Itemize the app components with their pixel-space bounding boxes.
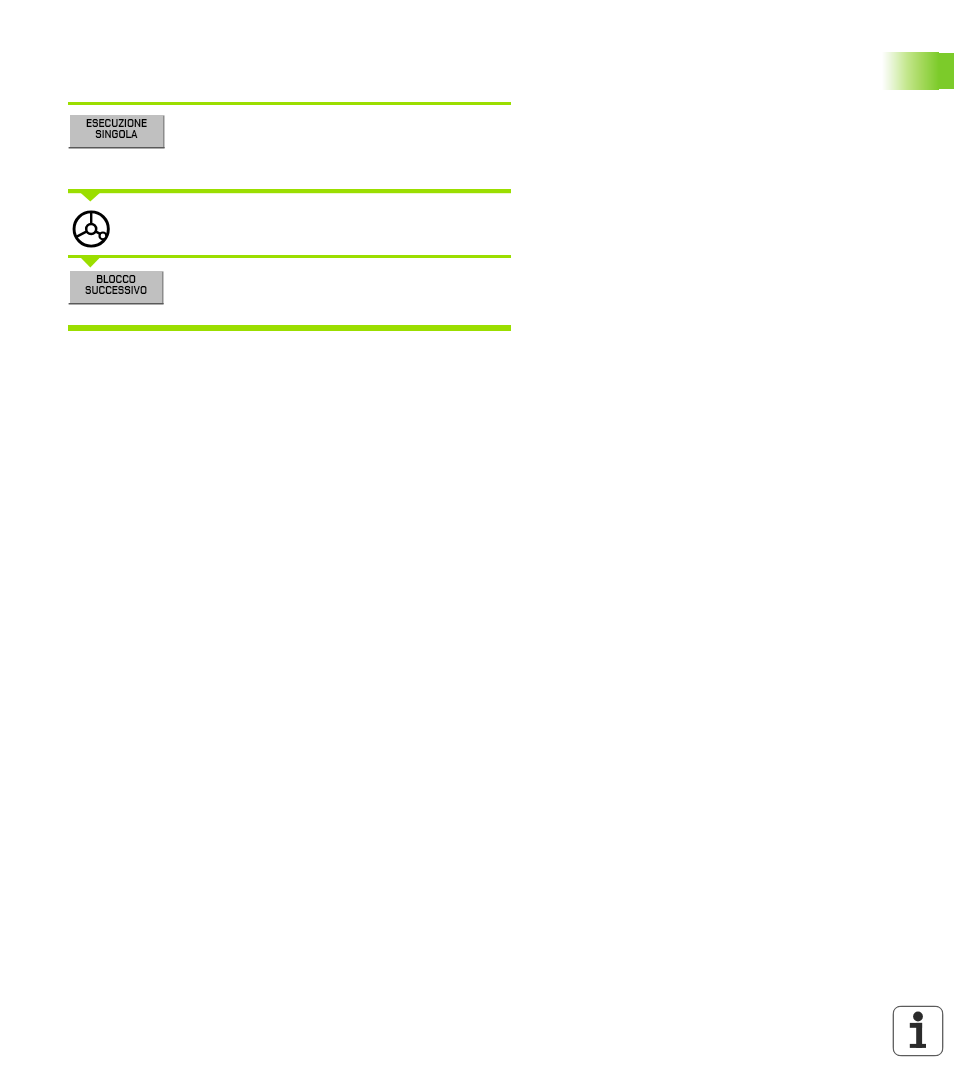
staticText: ESECUZIONE SINGOLA	[86, 115, 147, 142]
button[interactable]: BLOCCO SUCCESSIVO	[70, 271, 162, 303]
button[interactable]: Information	[892, 1005, 944, 1057]
button[interactable]: Electronic handwheel	[70, 208, 112, 250]
button[interactable]: ESECUZIONE SINGOLA	[70, 115, 163, 147]
staticText: BLOCCO SUCCESSIVO	[85, 271, 147, 298]
